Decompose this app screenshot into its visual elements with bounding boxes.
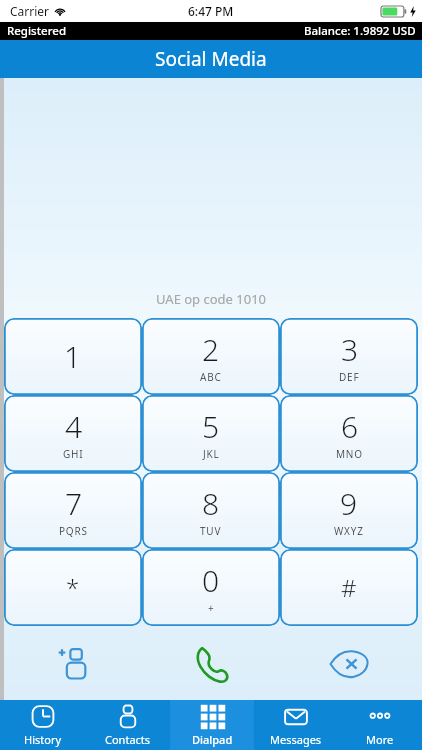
staticText: 8: [202, 483, 220, 524]
staticText: UAE op code 1010: [0, 290, 422, 308]
staticText: TUV: [200, 524, 222, 538]
button[interactable]: Dialpad: [170, 700, 254, 750]
staticText: 6: [341, 406, 359, 447]
staticText: 7: [65, 483, 83, 524]
staticText: DEF: [339, 370, 360, 384]
staticText: 5: [202, 406, 220, 447]
button[interactable]: 0: [142, 549, 280, 626]
button[interactable]: Call: [142, 634, 280, 694]
button[interactable]: 1: [4, 318, 142, 395]
staticText: +: [208, 601, 214, 615]
staticText: 1: [64, 336, 82, 377]
staticText: History: [24, 732, 62, 747]
staticText: 2: [202, 329, 220, 370]
button[interactable]: 4: [4, 395, 142, 472]
button[interactable]: 8: [142, 472, 280, 549]
button[interactable]: 7: [4, 472, 142, 549]
button[interactable]: Messages: [254, 700, 338, 750]
button[interactable]: Contacts: [85, 700, 170, 750]
button[interactable]: Add contact: [4, 634, 142, 694]
button[interactable]: *: [4, 549, 142, 626]
staticText: Social Media: [155, 46, 267, 72]
button[interactable]: 6: [280, 395, 418, 472]
button[interactable]: 9: [280, 472, 418, 549]
staticText: 6:47 PM: [188, 3, 234, 19]
button[interactable]: #: [280, 549, 418, 626]
staticText: 3: [341, 329, 359, 370]
button[interactable]: More: [338, 700, 422, 750]
staticText: GHI: [63, 447, 84, 461]
staticText: Balance: 1.9892 USD: [304, 23, 416, 39]
button[interactable]: Backspace: [280, 634, 418, 694]
staticText: 4: [65, 406, 83, 447]
button[interactable]: History: [0, 700, 85, 750]
staticText: JKL: [203, 447, 220, 461]
button[interactable]: 2: [142, 318, 280, 395]
staticText: More: [366, 732, 394, 747]
staticText: WXYZ: [334, 524, 364, 538]
staticText: Registered: [7, 23, 67, 39]
staticText: PQRS: [59, 524, 88, 538]
button[interactable]: 3: [280, 318, 418, 395]
staticText: Messages: [270, 732, 322, 747]
staticText: Contacts: [105, 732, 151, 747]
staticText: Carrier: [10, 3, 50, 19]
staticText: 0: [202, 560, 220, 601]
staticText: ABC: [200, 370, 222, 384]
staticText: Dialpad: [192, 732, 233, 747]
staticText: *: [66, 571, 80, 604]
staticText: 9: [340, 483, 358, 524]
button[interactable]: 5: [142, 395, 280, 472]
staticText: #: [341, 571, 357, 604]
staticText: MNO: [336, 447, 363, 461]
